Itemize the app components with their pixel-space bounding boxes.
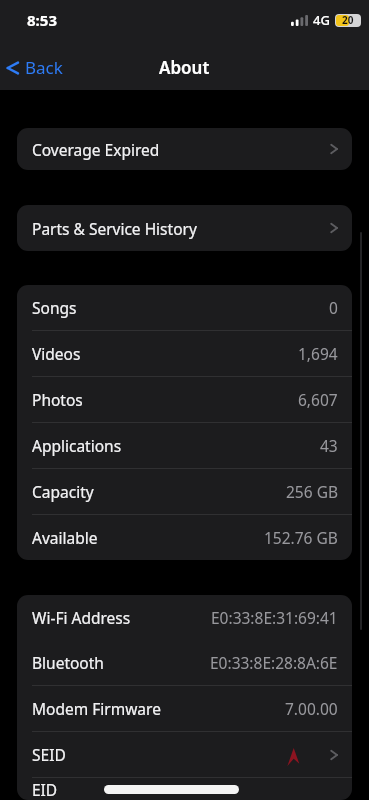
button[interactable]: Applications [17,423,352,468]
staticText: Back [25,56,63,79]
staticText: Modem Firmware [32,698,161,719]
staticText: 43 [320,435,338,456]
other: Open [330,748,338,762]
staticText: Videos [32,343,81,364]
button[interactable]: Modem Firmware [17,686,352,731]
staticText: 0 [329,297,338,318]
button[interactable]: Photos [17,377,352,422]
staticText: E0:33:8E:28:8A:6E [210,652,338,673]
button[interactable]: EID [17,778,352,800]
button[interactable]: Back [0,51,75,84]
staticText: Available [32,527,98,548]
staticText: SEID [32,744,66,765]
button[interactable]: Videos [17,331,352,376]
staticText: Bluetooth [32,652,104,673]
staticText: Coverage Expired [32,139,160,160]
staticText: EID [32,779,58,800]
staticText: E0:33:8E:31:69:41 [211,607,338,628]
other: Open [330,221,338,235]
staticText: 20 [342,13,354,27]
staticText: Parts & Service History [32,218,197,239]
button[interactable]: Capacity [17,469,352,514]
staticText: Songs [32,297,77,318]
staticText: 1,694 [298,343,338,364]
staticText: 8:53 [27,10,57,30]
button[interactable]: Available [17,515,352,560]
button[interactable]: Parts & Service History [17,205,352,251]
button[interactable]: Coverage Expired [17,128,352,170]
button[interactable]: Wi-Fi Address [17,595,352,640]
staticText: Capacity [32,481,94,502]
staticText: 256 GB [286,481,338,502]
staticText: Applications [32,435,122,456]
button[interactable]: Bluetooth [17,640,352,685]
staticText: About [159,56,210,79]
staticText: 4G [313,11,330,29]
button[interactable]: Songs [17,285,352,330]
staticText: 7.00.00 [285,698,338,719]
button[interactable]: SEID [17,732,352,777]
staticText: Photos [32,389,83,410]
staticText: 6,607 [298,389,338,410]
staticText: Wi-Fi Address [32,607,131,628]
other: Open [330,142,338,156]
staticText: 152.76 GB [264,527,338,548]
